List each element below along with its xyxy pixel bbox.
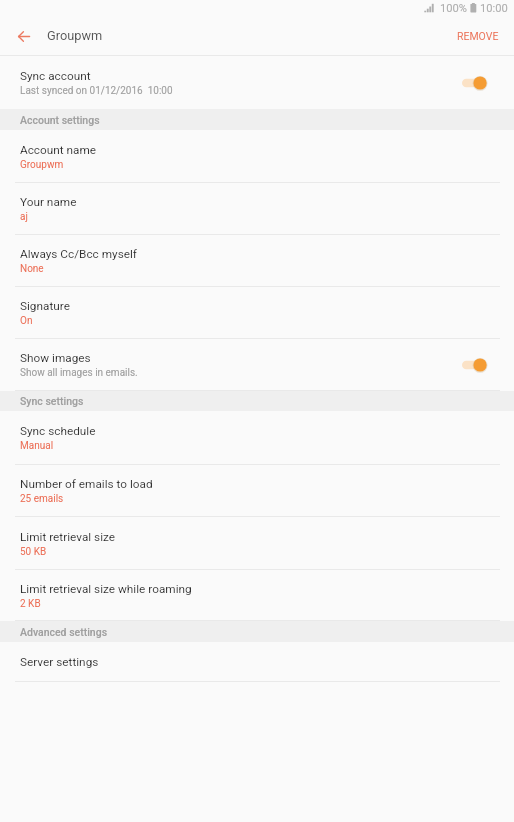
button[interactable]: Always Cc/Bcc myself xyxy=(0,235,514,287)
staticText: Account name xyxy=(20,143,97,157)
staticText: Last synced on 01/12/2016 10:00 xyxy=(20,85,173,97)
staticText: Groupwm xyxy=(20,159,64,171)
staticText: Your name xyxy=(20,195,77,209)
button[interactable]: Limit retrieval size xyxy=(0,517,514,570)
staticText: On xyxy=(20,315,33,327)
button[interactable]: Number of emails to load xyxy=(0,465,514,517)
button[interactable]: Account name xyxy=(0,130,514,183)
staticText: 25 emails xyxy=(20,493,64,505)
staticText: Limit retrieval size xyxy=(20,530,116,544)
staticText: Show all images in emails. xyxy=(20,367,138,379)
staticText: 10:00 xyxy=(480,2,508,15)
button[interactable]: Toggle sync account xyxy=(454,71,496,95)
staticText: 50 KB xyxy=(20,546,47,558)
staticText: Server settings xyxy=(20,655,99,669)
staticText: REMOVE xyxy=(457,30,499,42)
button[interactable]: Server settings xyxy=(0,642,514,682)
staticText: Advanced settings xyxy=(20,626,108,638)
staticText: Manual xyxy=(20,440,54,452)
button[interactable]: Signature xyxy=(0,287,514,339)
staticText: Account settings xyxy=(20,114,100,126)
button[interactable]: Your name xyxy=(0,183,514,235)
staticText: Sync settings xyxy=(20,395,84,407)
staticText: 2 KB xyxy=(20,598,41,610)
staticText: aj xyxy=(20,211,28,223)
button[interactable]: Toggle Show images xyxy=(454,353,496,377)
staticText: Signature xyxy=(20,299,70,313)
button[interactable]: Show images xyxy=(0,339,514,391)
staticText: Show images xyxy=(20,351,91,365)
button[interactable]: Sync account xyxy=(0,56,514,109)
staticText: Sync account xyxy=(20,69,91,83)
staticText: None xyxy=(20,263,44,275)
staticText: Groupwm xyxy=(47,28,103,43)
button[interactable]: Limit retrieval size while roaming xyxy=(0,570,514,621)
button[interactable]: Back xyxy=(11,24,36,49)
button[interactable]: REMOVE xyxy=(442,22,514,50)
staticText: Always Cc/Bcc myself xyxy=(20,247,137,261)
staticText: Sync schedule xyxy=(20,424,96,438)
staticText: 100% xyxy=(440,2,468,15)
staticText: Limit retrieval size while roaming xyxy=(20,582,192,596)
staticText: Number of emails to load xyxy=(20,477,153,491)
button[interactable]: Sync schedule xyxy=(0,411,514,465)
